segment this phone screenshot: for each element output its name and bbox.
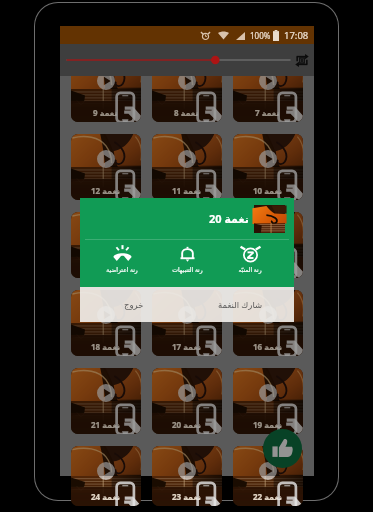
button[interactable]: نغمة 10: [233, 134, 303, 200]
button[interactable]: نغمة 16: [233, 290, 303, 356]
staticText: نغمة 23: [172, 491, 201, 502]
button[interactable]: نغمة 17: [152, 290, 222, 356]
button[interactable]: نغمة 12: [71, 134, 141, 200]
button[interactable]: نغمة 22: [233, 446, 303, 506]
staticText: نغمة 12: [91, 185, 120, 196]
staticText: شارك النغمة: [218, 299, 263, 311]
staticText: 100%: [250, 30, 271, 41]
staticText: نغمة 14: [172, 263, 201, 274]
button[interactable]: نغمة 8: [152, 76, 222, 122]
staticText: نغمة 17: [172, 341, 201, 352]
button[interactable]: نغمة 14: [152, 212, 222, 278]
button[interactable]: خروج: [80, 287, 187, 322]
button[interactable]: رنة اعتراضية: [94, 244, 150, 274]
button[interactable]: نغمة 11: [152, 134, 222, 200]
staticText: نغمة 21: [91, 419, 120, 430]
button[interactable]: نغمة 15: [71, 212, 141, 278]
button[interactable]: Repeat one: [292, 50, 312, 70]
staticText: نغمة 11: [172, 185, 201, 196]
staticText: نغمة 15: [91, 263, 120, 274]
button[interactable]: نغمة 18: [71, 290, 141, 356]
button[interactable]: نغمة 23: [152, 446, 222, 506]
button[interactable]: نغمة 7: [233, 76, 303, 122]
button[interactable]: رنة المنبّه: [222, 244, 278, 274]
button[interactable]: نغمة 21: [71, 368, 141, 434]
staticText: نغمة 24: [91, 491, 120, 502]
staticText: نغمة 16: [253, 341, 282, 352]
button[interactable]: شارك النغمة: [187, 287, 294, 322]
staticText: نغمة 13: [253, 263, 282, 274]
button[interactable]: نغمة 13: [233, 212, 303, 278]
staticText: نغمة 20: [172, 419, 201, 430]
button[interactable]: نغمة 24: [71, 446, 141, 506]
button[interactable]: نغمة 9: [71, 76, 141, 122]
staticText: نغمة 7: [255, 107, 280, 118]
staticText: رنة التنبيهات: [172, 266, 203, 274]
button[interactable]: نغمة 19: [233, 368, 303, 434]
button[interactable]: رنة التنبيهات: [159, 244, 215, 274]
staticText: 17:08: [284, 29, 309, 42]
staticText: نغمة 9: [93, 107, 118, 118]
staticText: نغمة 10: [253, 185, 282, 196]
button[interactable]: Like: [263, 429, 302, 468]
staticText: نغمة 22: [253, 491, 282, 502]
staticText: خروج: [124, 300, 144, 310]
staticText: رنة المنبّه: [238, 266, 262, 274]
staticText: نغمة 8: [174, 107, 199, 118]
staticText: نغمة 18: [91, 341, 120, 352]
staticText: نغمة 19: [253, 419, 282, 430]
button[interactable]: نغمة 20: [152, 368, 222, 434]
staticText: نغمة 20: [209, 211, 249, 226]
staticText: رنة اعتراضية: [106, 266, 138, 274]
